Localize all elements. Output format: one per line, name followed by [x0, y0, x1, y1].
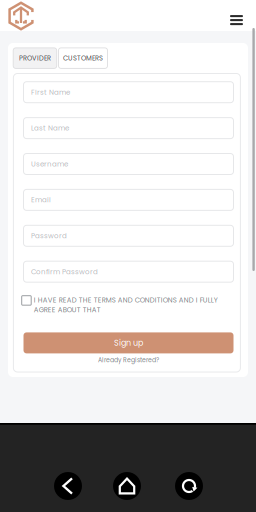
button[interactable]: Email [23, 189, 233, 210]
button[interactable]: Home [113, 472, 141, 500]
staticText: Sign up [114, 337, 143, 348]
staticText: First Name [31, 87, 70, 97]
staticText: Email [31, 195, 51, 205]
button[interactable]: Password [23, 225, 233, 246]
button[interactable]: Menu [221, 6, 252, 34]
staticText: CUSTOMERS [63, 53, 103, 63]
staticText: I HAVE READ THE TERMS AND CONDITIONS AND… [34, 295, 218, 315]
staticText: Username [31, 159, 68, 169]
button[interactable]: Home [8, 2, 34, 30]
button[interactable]: Confirm Password [23, 261, 233, 282]
staticText: Last Name [31, 123, 69, 133]
button[interactable]: Recent apps [175, 472, 203, 500]
staticText: Confirm Password [31, 267, 98, 277]
staticText: Already Registered? [98, 356, 159, 364]
button[interactable]: Already Registered? [23, 355, 233, 365]
button[interactable]: Username [23, 153, 233, 174]
staticText: Password [31, 231, 67, 241]
button[interactable]: CUSTOMERS [58, 48, 107, 68]
button[interactable]: Back [54, 472, 82, 500]
button[interactable]: I HAVE READ THE TERMS AND CONDITIONS AND… [22, 295, 232, 315]
button[interactable]: Last Name [23, 118, 233, 139]
button[interactable]: PROVIDER [13, 48, 57, 68]
staticText: PROVIDER [19, 53, 51, 63]
button[interactable]: First Name [23, 82, 233, 103]
button[interactable]: Sign up [23, 332, 233, 353]
